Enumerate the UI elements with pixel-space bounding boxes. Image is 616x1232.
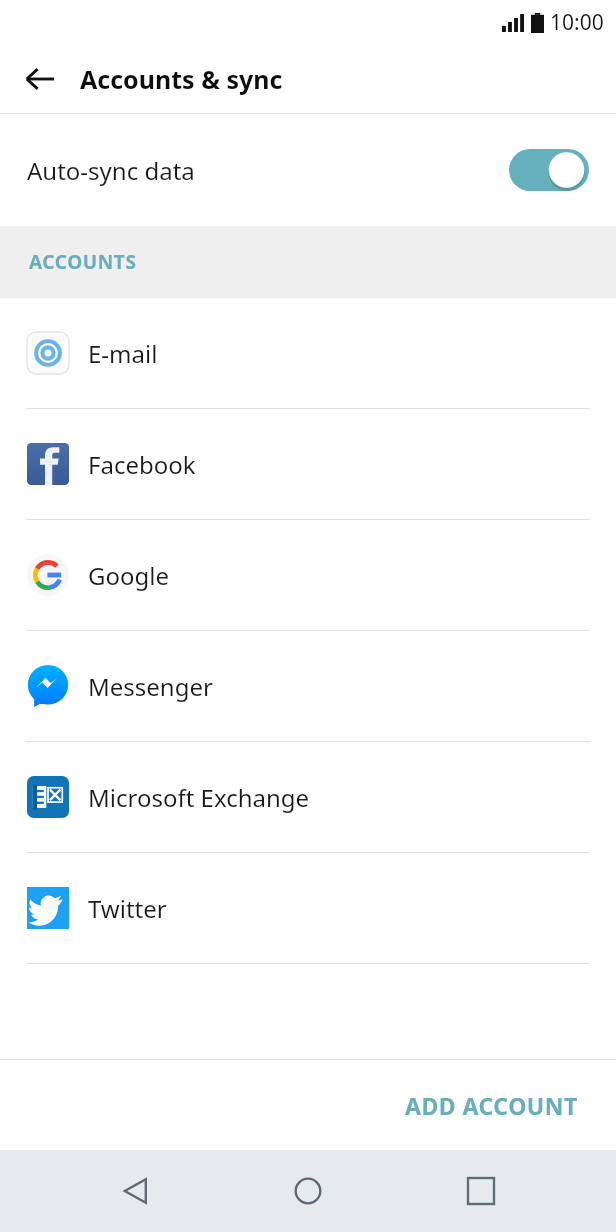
button[interactable]: Twitter [0, 853, 616, 963]
staticText: E-mail [88, 337, 158, 370]
staticText: Google [88, 559, 169, 592]
staticText: Facebook [88, 448, 196, 481]
button[interactable]: Facebook [0, 409, 616, 519]
button[interactable]: E-mail [0, 298, 616, 408]
staticText: ADD ACCOUNT [405, 1090, 578, 1121]
staticText: Messenger [88, 670, 213, 703]
staticText: Microsoft Exchange [88, 781, 310, 814]
staticText: 10:00 [550, 8, 604, 37]
button[interactable]: ADD ACCOUNT [397, 1082, 586, 1129]
staticText: Auto-sync data [27, 154, 509, 187]
button[interactable]: Recent apps [444, 1154, 518, 1228]
staticText: Accounts & sync [80, 62, 283, 96]
staticText: Twitter [88, 892, 167, 925]
staticText: ACCOUNTS [29, 249, 137, 275]
button[interactable]: Auto-sync data [0, 114, 616, 226]
button[interactable]: Back [14, 53, 66, 105]
button[interactable]: Back [99, 1154, 173, 1228]
button[interactable]: Google [0, 520, 616, 630]
button[interactable]: Microsoft Exchange [0, 742, 616, 852]
button[interactable]: Home [271, 1154, 345, 1228]
button[interactable]: Messenger [0, 631, 616, 741]
